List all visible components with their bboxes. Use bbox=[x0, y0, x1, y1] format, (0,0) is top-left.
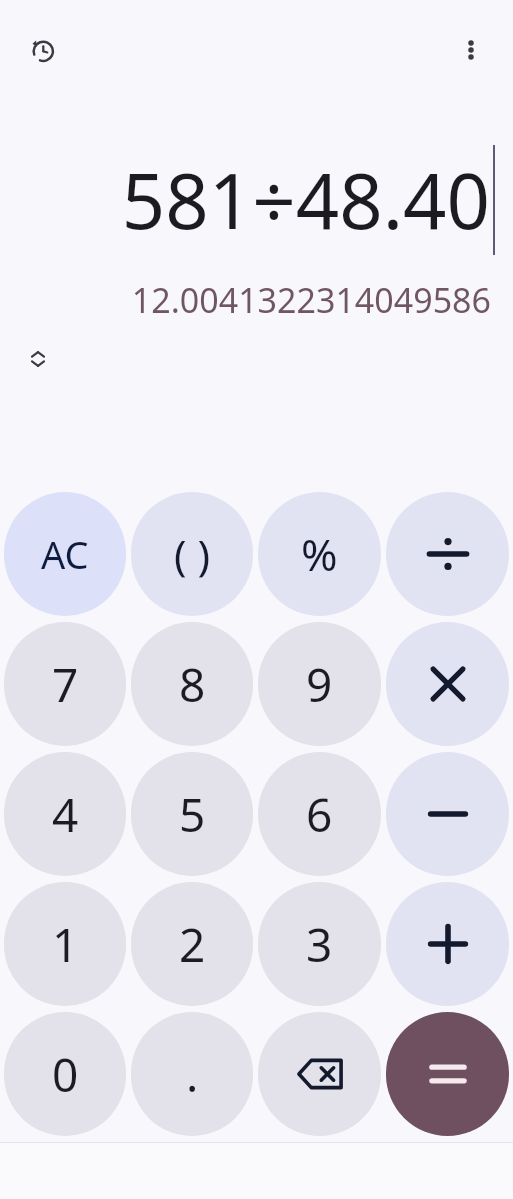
staticText: ( ) bbox=[174, 526, 211, 583]
button[interactable]: Add bbox=[386, 882, 509, 1006]
button[interactable]: 1 bbox=[4, 882, 126, 1006]
button[interactable]: 4 bbox=[4, 752, 126, 876]
button[interactable]: 5 bbox=[131, 752, 253, 876]
button[interactable]: Equals bbox=[386, 1012, 509, 1136]
button[interactable]: Multiply bbox=[386, 622, 509, 746]
button[interactable]: 8 bbox=[131, 622, 253, 746]
button[interactable]: 2 bbox=[131, 882, 253, 1006]
button[interactable]: 9 bbox=[258, 622, 381, 746]
staticText: 6 bbox=[306, 783, 333, 846]
staticText: 0 bbox=[52, 1043, 79, 1106]
button[interactable]: 3 bbox=[258, 882, 381, 1006]
button[interactable]: Backspace bbox=[258, 1012, 381, 1136]
staticText: AC bbox=[41, 528, 89, 580]
button[interactable]: 0 bbox=[4, 1012, 126, 1136]
button[interactable]: . bbox=[131, 1012, 253, 1136]
staticText: 5 bbox=[179, 783, 206, 846]
staticText: 3 bbox=[306, 913, 333, 976]
staticText: . bbox=[186, 1043, 199, 1106]
staticText: 12.0041322314049586 bbox=[131, 277, 491, 323]
staticText: 1 bbox=[52, 913, 79, 976]
staticText: 581÷48.40 bbox=[121, 148, 490, 252]
button[interactable]: History bbox=[14, 22, 70, 78]
button[interactable]: Divide bbox=[386, 492, 509, 616]
button[interactable]: Expand result bbox=[16, 337, 60, 381]
button[interactable]: % bbox=[258, 492, 381, 616]
staticText: 7 bbox=[52, 653, 79, 716]
staticText: 8 bbox=[179, 653, 206, 716]
staticText: 2 bbox=[179, 913, 206, 976]
button[interactable]: Subtract bbox=[386, 752, 509, 876]
button[interactable]: More options bbox=[443, 22, 499, 78]
staticText: 9 bbox=[306, 653, 333, 716]
button[interactable]: 7 bbox=[4, 622, 126, 746]
button[interactable]: 6 bbox=[258, 752, 381, 876]
staticText: 4 bbox=[52, 783, 79, 846]
button[interactable]: ( ) bbox=[131, 492, 253, 616]
staticText: % bbox=[301, 524, 338, 584]
button[interactable]: AC bbox=[4, 492, 126, 616]
